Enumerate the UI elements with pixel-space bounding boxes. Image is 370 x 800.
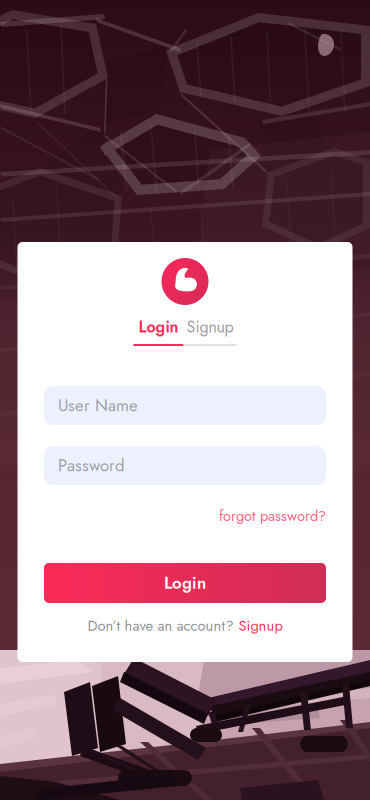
staticText: Signup	[238, 615, 282, 636]
staticText: Login	[138, 315, 178, 338]
staticText: User Name	[58, 393, 138, 418]
staticText: Signup	[186, 315, 233, 338]
button[interactable]: Login	[44, 563, 326, 603]
staticText: Login	[164, 571, 206, 595]
button[interactable]: forgot password?	[44, 507, 326, 525]
button[interactable]: Signup	[183, 318, 236, 336]
staticText: Password	[58, 453, 125, 478]
button[interactable]: Signup	[238, 615, 282, 636]
staticText: Don’t have an account?	[87, 615, 233, 636]
staticText: forgot password?	[219, 505, 326, 527]
button[interactable]: Login	[133, 318, 183, 336]
